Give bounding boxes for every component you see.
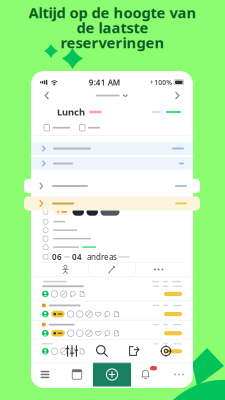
button[interactable] bbox=[31, 320, 193, 339]
staticText: reserveringen bbox=[60, 33, 164, 52]
staticText: 06 bbox=[52, 252, 62, 262]
button[interactable]: Meldingen bbox=[131, 362, 163, 386]
button[interactable]: Nieuwe reservering bbox=[93, 362, 131, 386]
button[interactable] bbox=[31, 301, 193, 320]
staticText: 100% bbox=[154, 78, 172, 87]
staticText: Lunch bbox=[57, 106, 85, 118]
button[interactable] bbox=[24, 196, 200, 210]
button[interactable] bbox=[31, 142, 193, 155]
staticText: Altijd op de hoogte van bbox=[28, 3, 196, 22]
button[interactable] bbox=[31, 157, 193, 170]
button[interactable] bbox=[44, 122, 70, 134]
button[interactable]: Vorige bbox=[37, 86, 57, 104]
button[interactable]: Agenda bbox=[61, 362, 93, 386]
button[interactable]: Gasten bbox=[42, 263, 88, 276]
button[interactable] bbox=[79, 122, 100, 134]
button[interactable]: Datum bbox=[92, 86, 132, 104]
button[interactable]: Meer bbox=[163, 362, 195, 386]
staticText: de laatste bbox=[76, 18, 148, 37]
button[interactable]: Volgende bbox=[167, 86, 187, 104]
staticText: andreas bbox=[87, 252, 117, 262]
button[interactable] bbox=[24, 179, 200, 193]
button[interactable]: Instellingen bbox=[155, 340, 177, 362]
button[interactable]: Zoeken bbox=[91, 340, 113, 362]
staticText: 04 bbox=[72, 252, 82, 262]
button[interactable]: Meer opties bbox=[136, 263, 182, 276]
staticText: 9:41 AM bbox=[89, 77, 120, 88]
button[interactable] bbox=[31, 282, 193, 301]
button[interactable]: Filters bbox=[61, 340, 83, 362]
button[interactable]: Lijst bbox=[29, 362, 61, 386]
button[interactable]: Bewerken bbox=[89, 263, 135, 276]
button[interactable]: Exporteren bbox=[123, 340, 145, 362]
